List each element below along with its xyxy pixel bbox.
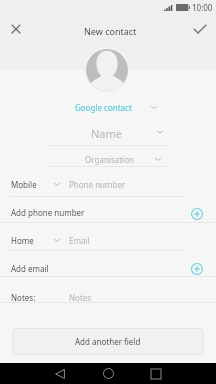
staticText: Notes	[69, 292, 92, 303]
staticText: Notes:	[11, 292, 36, 303]
button[interactable]: Add another field	[12, 328, 204, 355]
staticText: Mobile	[11, 179, 37, 190]
staticText: Add email	[11, 263, 49, 274]
button[interactable]: Add	[191, 263, 203, 275]
button[interactable]: Google contact	[0, 98, 216, 116]
staticText: Email	[69, 235, 90, 246]
staticText: Google contact	[75, 102, 132, 113]
button[interactable]: Close	[0, 13, 32, 45]
button[interactable]: Save	[184, 13, 216, 45]
button[interactable]: Contact photo	[84, 47, 130, 93]
button[interactable]: Recent apps	[140, 363, 172, 384]
button[interactable]: Organisation	[0, 150, 216, 168]
button[interactable]: Name	[0, 123, 216, 143]
button[interactable]: Notes:	[0, 285, 216, 309]
button[interactable]: Home	[0, 228, 216, 252]
button[interactable]: Mobile	[0, 172, 216, 196]
staticText: Phone number	[69, 179, 126, 190]
button[interactable]: Add email	[0, 256, 216, 280]
staticText: Home	[11, 235, 34, 246]
staticText: 10:00	[192, 2, 213, 13]
staticText: Organisation	[85, 154, 134, 165]
staticText: New contact	[84, 25, 137, 37]
staticText: Add phone number	[11, 207, 85, 218]
button[interactable]: Back	[44, 363, 76, 384]
staticText: Add another field	[75, 336, 141, 347]
button[interactable]: Add phone number	[0, 200, 216, 224]
button[interactable]: Add	[191, 208, 203, 220]
button[interactable]: Home	[92, 363, 124, 384]
staticText: Name	[91, 126, 123, 141]
